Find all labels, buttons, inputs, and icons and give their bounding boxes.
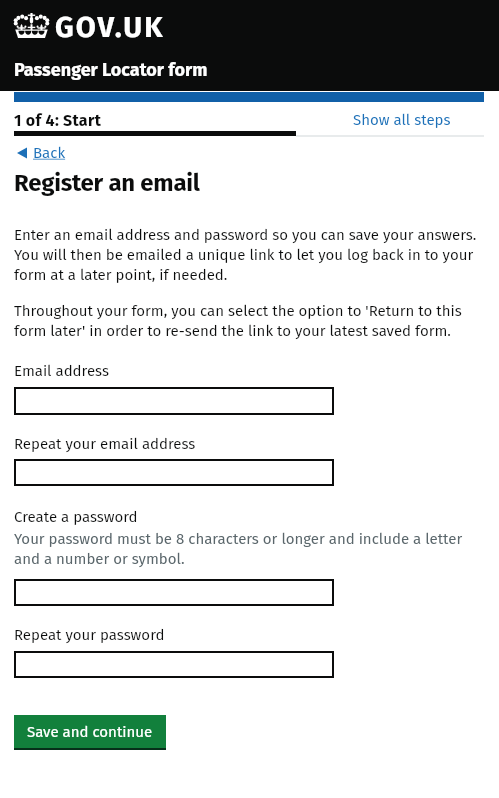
staticText: Passenger Locator form <box>14 59 208 81</box>
staticText: Create a password <box>14 508 138 526</box>
staticText: Enter an email address and password so y… <box>14 226 478 284</box>
button[interactable]: Save and continue <box>14 715 166 748</box>
button[interactable]: GOV.UK home page <box>14 9 165 44</box>
staticText: GOV.UK <box>55 10 165 45</box>
button[interactable]: Show all steps <box>353 111 451 129</box>
staticText: Repeat your password <box>14 626 165 644</box>
staticText: 1 of 4: Start <box>14 111 102 130</box>
staticText: Your password must be 8 characters or lo… <box>14 530 474 568</box>
staticText: Back <box>33 144 66 162</box>
staticText: Throughout your form, you can select the… <box>14 302 478 340</box>
staticText: Register an email <box>14 169 200 198</box>
staticText: Email address <box>14 362 109 380</box>
button[interactable]: Back <box>16 143 66 163</box>
staticText: Repeat your email address <box>14 435 196 453</box>
staticText: Show all steps <box>353 111 451 129</box>
staticText: Save and continue <box>27 723 153 741</box>
